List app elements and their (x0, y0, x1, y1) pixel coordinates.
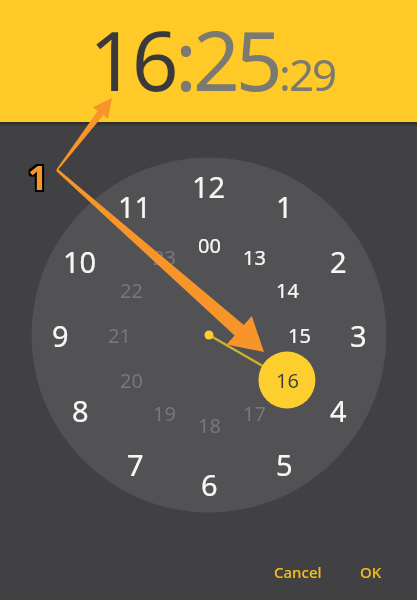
staticText: 17 (243, 400, 266, 427)
staticText: 23 (153, 244, 176, 271)
button[interactable]: 29 (289, 44, 335, 104)
staticText: 15 (288, 322, 311, 349)
staticText: 1 (30, 156, 50, 202)
staticText: 1 (30, 154, 50, 200)
button[interactable]: OK (348, 550, 394, 594)
staticText: 13 (243, 244, 266, 271)
staticText: 16 (276, 367, 299, 394)
staticText: 1 (26, 154, 46, 200)
staticText: 20 (120, 367, 143, 394)
staticText: 1 (28, 156, 48, 202)
staticText: 14 (276, 277, 299, 304)
staticText: 2 (330, 242, 347, 281)
staticText: 8 (72, 391, 89, 430)
staticText: 21 (108, 322, 131, 349)
button[interactable]: 25 (193, 3, 279, 115)
staticText: 9 (52, 316, 69, 355)
button[interactable]: 16 (89, 3, 175, 115)
staticText: 7 (127, 445, 144, 484)
staticText: 3 (350, 316, 367, 355)
button[interactable]: Cancel (262, 550, 334, 594)
staticText: 6 (201, 465, 218, 504)
staticText: 1 (26, 156, 46, 202)
staticText: 22 (120, 277, 143, 304)
staticText: 19 (153, 400, 176, 427)
staticText: 1 (28, 154, 48, 200)
staticText: 5 (276, 445, 293, 484)
staticText: 4 (330, 391, 347, 430)
staticText: : (279, 44, 289, 104)
staticText: 1 (28, 152, 48, 198)
staticText: OK (360, 562, 382, 582)
staticText: 00 (198, 232, 221, 259)
staticText: 10 (63, 242, 97, 281)
staticText: 1 (276, 187, 293, 226)
staticText: Cancel (274, 562, 322, 582)
staticText: 1 (30, 152, 50, 198)
staticText: 1 (26, 152, 46, 198)
staticText: 18 (198, 412, 221, 439)
staticText: 11 (118, 187, 152, 226)
staticText: 12 (192, 167, 226, 206)
staticText: : (175, 3, 193, 115)
